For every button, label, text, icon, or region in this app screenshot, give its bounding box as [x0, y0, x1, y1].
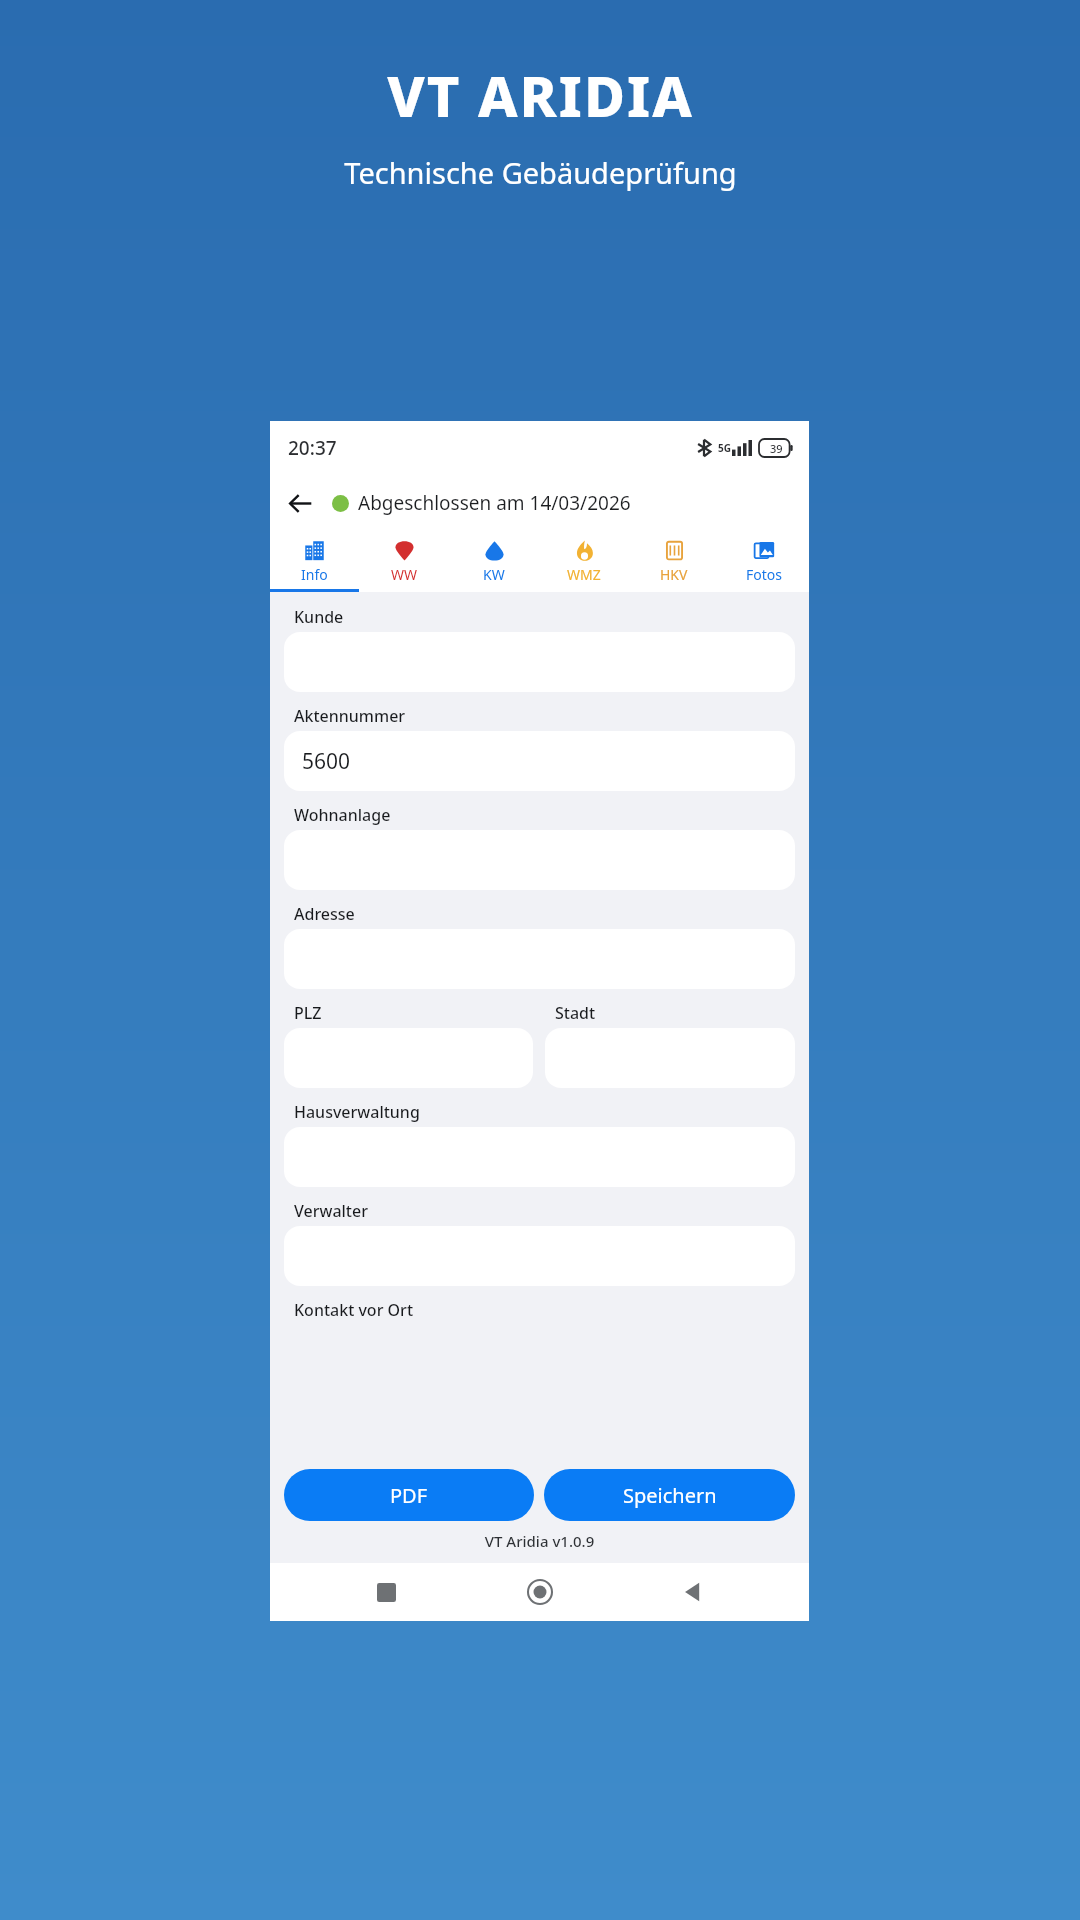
button[interactable]: Zurück [616, 1563, 769, 1621]
staticText: 5G [718, 441, 731, 455]
staticText: Adresse [294, 903, 355, 925]
button[interactable]: 5600 [284, 731, 795, 791]
button[interactable]: Fotos [719, 532, 809, 592]
staticText: Speichern [623, 1482, 717, 1509]
staticText: 20:37 [288, 435, 337, 461]
staticText: 39 [770, 441, 783, 456]
staticText: Verwalter [294, 1200, 368, 1222]
staticText: VT ARIDIA [387, 57, 694, 133]
staticText: VT Aridia v1.0.9 [278, 1531, 801, 1551]
button[interactable]: Info [270, 532, 359, 592]
staticText: PDF [390, 1482, 428, 1509]
button[interactable]: WMZ [539, 532, 629, 592]
button[interactable]: Zuletzt verwendet [310, 1563, 463, 1621]
button[interactable]: PDF [284, 1469, 534, 1521]
staticText: 5600 [302, 747, 351, 776]
button[interactable]: WW [359, 532, 449, 592]
staticText: Wohnanlage [294, 804, 391, 826]
staticText: Kontakt vor Ort [294, 1299, 414, 1321]
staticText: KW [483, 565, 505, 584]
staticText: Stadt [555, 1002, 596, 1024]
staticText: WMZ [567, 565, 601, 584]
staticText: HKV [660, 565, 688, 584]
button[interactable]: Startbildschirm [463, 1563, 616, 1621]
staticText: Abgeschlossen am 14/03/2026 [358, 490, 631, 516]
staticText: Kunde [294, 606, 344, 628]
staticText: Aktennummer [294, 705, 406, 727]
button[interactable]: Speichern [544, 1469, 795, 1521]
button[interactable]: HKV [629, 532, 719, 592]
staticText: WW [391, 565, 418, 584]
staticText: PLZ [294, 1002, 322, 1024]
staticText: Fotos [746, 565, 782, 584]
button[interactable]: Zurück [278, 481, 322, 525]
button[interactable]: KW [449, 532, 539, 592]
staticText: Hausverwaltung [294, 1101, 420, 1123]
staticText: Info [301, 565, 328, 584]
staticText: Technische Gebäudeprüfung [344, 153, 737, 192]
